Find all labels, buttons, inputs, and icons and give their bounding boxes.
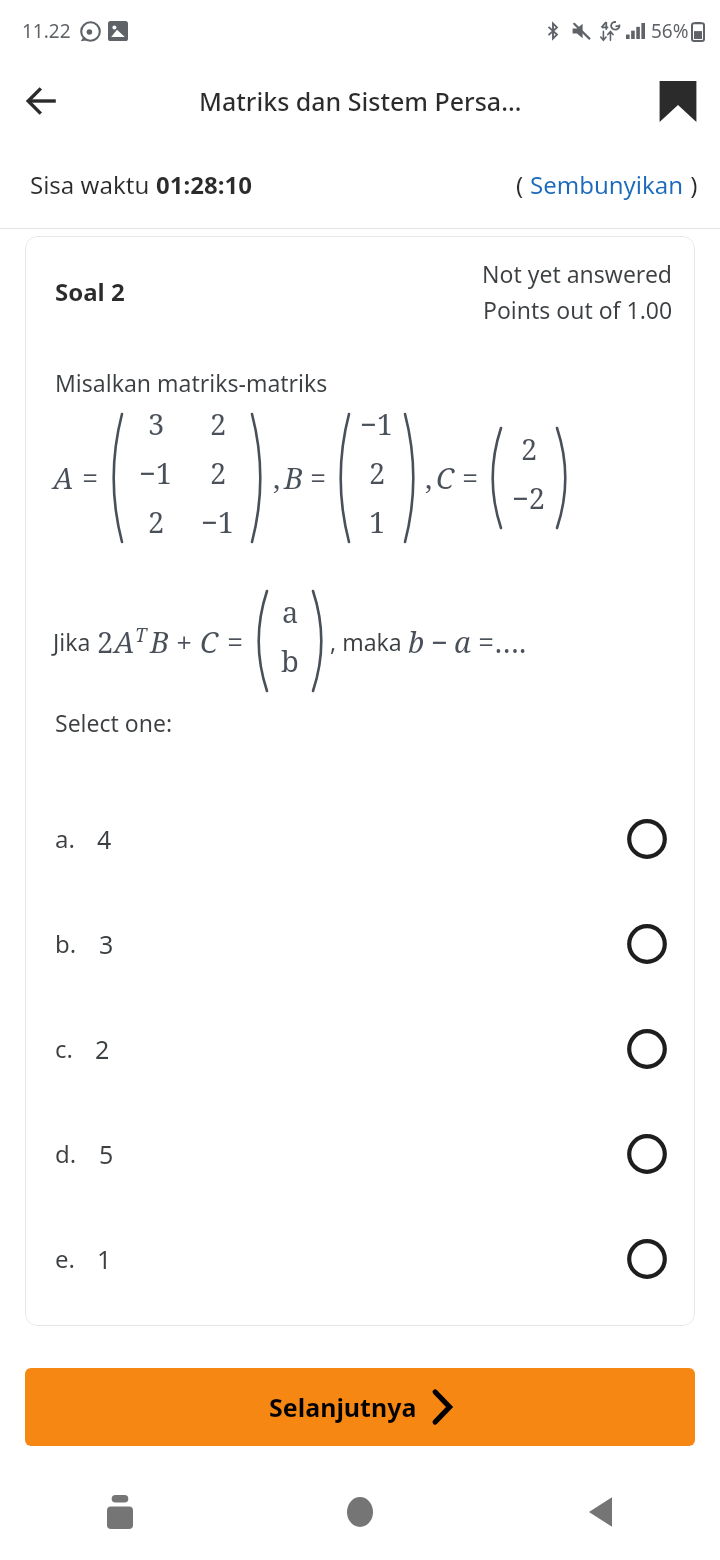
staticText: 2 [95, 1032, 110, 1066]
staticText: b. [55, 927, 77, 960]
staticText: d. [55, 1137, 77, 1170]
staticText: c. [55, 1032, 73, 1065]
staticText: T [135, 622, 147, 648]
staticText: Matriks dan Sistem Persa… [199, 84, 522, 118]
staticText: b [408, 622, 425, 661]
button[interactable]: Home [240, 1464, 480, 1560]
staticText: Misalkan matriks-matriks [55, 367, 328, 398]
staticText: A [114, 622, 135, 661]
staticText: = [310, 458, 327, 497]
staticText: a [282, 592, 299, 631]
staticText: 2 [210, 404, 227, 443]
staticText: = [227, 622, 244, 661]
staticText: a. [55, 822, 75, 855]
staticText: 1 [369, 502, 386, 541]
button[interactable]: d. [25, 1101, 695, 1206]
button[interactable]: Recent apps [0, 1464, 240, 1560]
staticText: Sembunyikan [530, 168, 684, 201]
button[interactable]: a. [25, 786, 695, 891]
button[interactable]: ( [516, 168, 698, 201]
staticText: − [431, 622, 448, 661]
staticText: −1 [139, 453, 173, 492]
button[interactable]: Back [14, 73, 70, 129]
staticText: = [462, 458, 479, 497]
staticText: , [425, 458, 433, 497]
staticText: 3 [148, 404, 165, 443]
button[interactable]: Selanjutnya [25, 1368, 695, 1446]
staticText: + [176, 622, 193, 661]
staticText: 01:28:10 [156, 168, 252, 201]
staticText: Select one: [55, 707, 173, 738]
staticText: −1 [201, 502, 235, 541]
staticText: Jika [53, 626, 97, 657]
staticText: A [53, 458, 74, 497]
staticText: Points out of 1.00 [483, 294, 673, 325]
staticText: 2 [97, 622, 114, 661]
staticText: 56% [651, 18, 689, 44]
staticText: = [82, 458, 99, 497]
staticText: , [273, 458, 281, 497]
staticText: 5 [99, 1137, 114, 1171]
staticText: 1 [97, 1242, 112, 1276]
staticText: −1 [360, 404, 394, 443]
staticText: 3 [99, 927, 114, 961]
staticText: C [200, 622, 219, 661]
staticText: ) [684, 168, 698, 201]
staticText: a [454, 622, 471, 661]
staticText: 2 [148, 502, 165, 541]
staticText: 4 [97, 822, 112, 856]
button[interactable]: c. [25, 996, 695, 1101]
staticText: Not yet answered [482, 258, 673, 289]
staticText: Sisa waktu [30, 168, 156, 201]
staticText: 2 [521, 429, 538, 468]
staticText: 2 [369, 453, 386, 492]
staticText: e. [55, 1242, 75, 1275]
staticText: , maka [330, 626, 408, 657]
staticText: Soal 2 [55, 275, 125, 308]
staticText: 2 [210, 453, 227, 492]
staticText: 11.22 [22, 18, 71, 44]
button[interactable]: Back [480, 1464, 720, 1560]
staticText: Selanjutnya [269, 1390, 417, 1424]
staticText: B [150, 622, 169, 661]
staticText: =…. [478, 622, 527, 661]
staticText: C [436, 458, 455, 497]
staticText: ( [516, 168, 530, 201]
button[interactable]: b. [25, 891, 695, 996]
button[interactable]: e. [25, 1206, 695, 1311]
button[interactable]: Bookmark [650, 73, 706, 129]
staticText: b [281, 641, 299, 680]
staticText: B [284, 458, 303, 497]
staticText: −2 [512, 478, 546, 517]
